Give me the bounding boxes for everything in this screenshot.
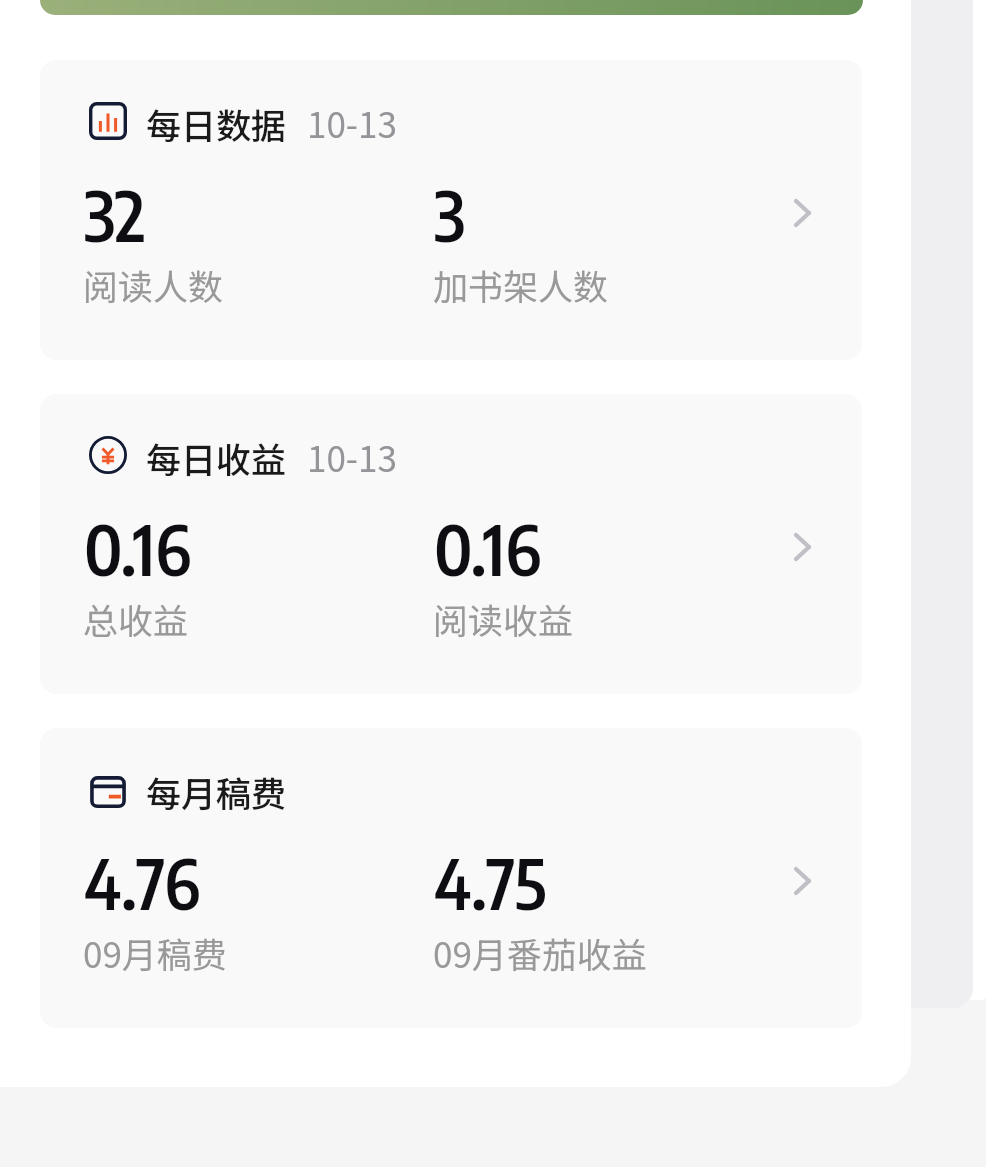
other: 每月稿费 bbox=[89, 770, 127, 808]
button[interactable]: 查看每月稿费 bbox=[791, 864, 825, 898]
staticText: 阅读人数 bbox=[83, 259, 224, 310]
staticText: 0.16 bbox=[84, 506, 192, 591]
staticText: 总收益 bbox=[83, 593, 189, 644]
other: 每日收益 bbox=[89, 436, 127, 474]
staticText: 4.75 bbox=[434, 840, 547, 925]
other: 每日数据 bbox=[89, 102, 127, 140]
staticText: 加书架人数 bbox=[433, 259, 609, 310]
button[interactable]: 每月稿费 bbox=[40, 728, 862, 1028]
staticText: 32 bbox=[84, 172, 146, 257]
staticText: 4.76 bbox=[84, 840, 201, 925]
button[interactable]: 作者中心横幅 bbox=[40, 0, 863, 15]
button[interactable]: 每日收益 bbox=[40, 394, 862, 694]
button[interactable]: 查看每日收益 bbox=[791, 530, 825, 564]
staticText: 每日收益 bbox=[146, 432, 287, 483]
staticText: 0.16 bbox=[434, 506, 542, 591]
staticText: 3 bbox=[434, 172, 466, 257]
staticText: 09月番茄收益 bbox=[433, 927, 647, 978]
staticText: 每月稿费 bbox=[146, 766, 287, 817]
button[interactable]: 查看每日数据 bbox=[791, 196, 825, 230]
staticText: 09月稿费 bbox=[83, 927, 227, 978]
button[interactable]: 每日数据 bbox=[40, 60, 862, 360]
staticText: 10-13 bbox=[307, 97, 397, 148]
staticText: 10-13 bbox=[307, 431, 397, 482]
staticText: 阅读收益 bbox=[433, 593, 574, 644]
staticText: 每日数据 bbox=[146, 98, 287, 149]
